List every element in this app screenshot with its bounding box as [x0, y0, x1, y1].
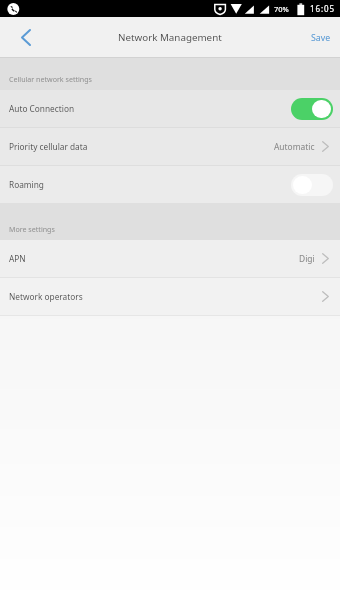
button[interactable]: Toggle on [291, 98, 333, 120]
button[interactable]: Network operators [0, 278, 340, 315]
staticText: 16:05 [310, 3, 335, 14]
button[interactable]: Back [0, 17, 52, 58]
staticText: Roaming [9, 179, 44, 190]
button[interactable]: Priority cellular data [0, 128, 340, 165]
staticText: 70% [274, 4, 289, 14]
staticText: Automatic [274, 141, 315, 152]
staticText: APN [9, 253, 26, 264]
button[interactable]: Toggle off [291, 174, 333, 196]
staticText: Save [311, 32, 331, 44]
staticText: Network operators [9, 291, 83, 302]
staticText: Auto Connection [9, 103, 75, 114]
button[interactable]: Roaming [0, 166, 340, 203]
button[interactable]: APN [0, 240, 340, 277]
button[interactable]: Auto Connection [0, 90, 340, 127]
staticText: Network Management [118, 31, 222, 44]
staticText: More settings [9, 224, 55, 234]
staticText: Cellular network settings [9, 74, 92, 84]
staticText: Priority cellular data [9, 141, 88, 152]
button[interactable]: Save [311, 32, 331, 44]
staticText: Digi [299, 253, 315, 264]
